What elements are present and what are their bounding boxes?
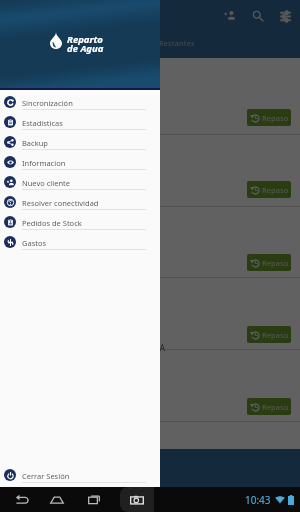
staticText: Repaso [262,185,289,195]
button[interactable]: Repaso [247,398,291,415]
staticText: Restantes [159,39,195,49]
button[interactable]: Camera [120,487,154,512]
button[interactable]: Cerrar Sesión [0,463,160,483]
button[interactable]: Back [9,487,35,512]
staticText: Estadísticas [22,118,63,128]
button[interactable]: Repaso [247,254,291,271]
staticText: Repaso [262,113,289,123]
button[interactable]: Estadísticas [0,110,160,130]
button[interactable]: Gastos [0,230,160,250]
button[interactable]: Add client [217,3,243,29]
button[interactable]: Nuevo cliente [0,170,160,190]
staticText: Repaso [262,258,289,268]
staticText: Gastos [22,238,47,248]
button[interactable]: Repaso [247,109,291,126]
button[interactable]: Backup [0,130,160,150]
button[interactable]: Search [245,3,271,29]
staticText: Informacion [22,158,66,168]
staticText: Pedidos de Stock [22,218,82,228]
staticText: Backup [22,138,48,148]
button[interactable]: Sincronización [0,90,160,110]
button[interactable]: Filter [272,3,298,29]
button[interactable]: Informacion [0,150,160,170]
staticText: Repaso [262,402,289,412]
button[interactable]: Repaso [247,326,291,343]
staticText: Repaso [262,330,289,340]
button[interactable]: Home [44,487,70,512]
staticText: de Agua [67,42,104,55]
button[interactable]: Recents [81,487,107,512]
staticText: Cerrar Sesión [22,471,70,481]
staticText: Nuevo cliente [22,178,70,188]
staticText: Resolver conectividad [22,198,99,208]
staticText: 10:43 [245,493,271,507]
staticText: IA [157,342,165,353]
staticText: Reparto [67,33,103,46]
button[interactable]: Resolver conectividad [0,190,160,210]
button[interactable]: Pedidos de Stock [0,210,160,230]
staticText: Sincronización [22,98,73,108]
button[interactable]: Repaso [247,181,291,198]
